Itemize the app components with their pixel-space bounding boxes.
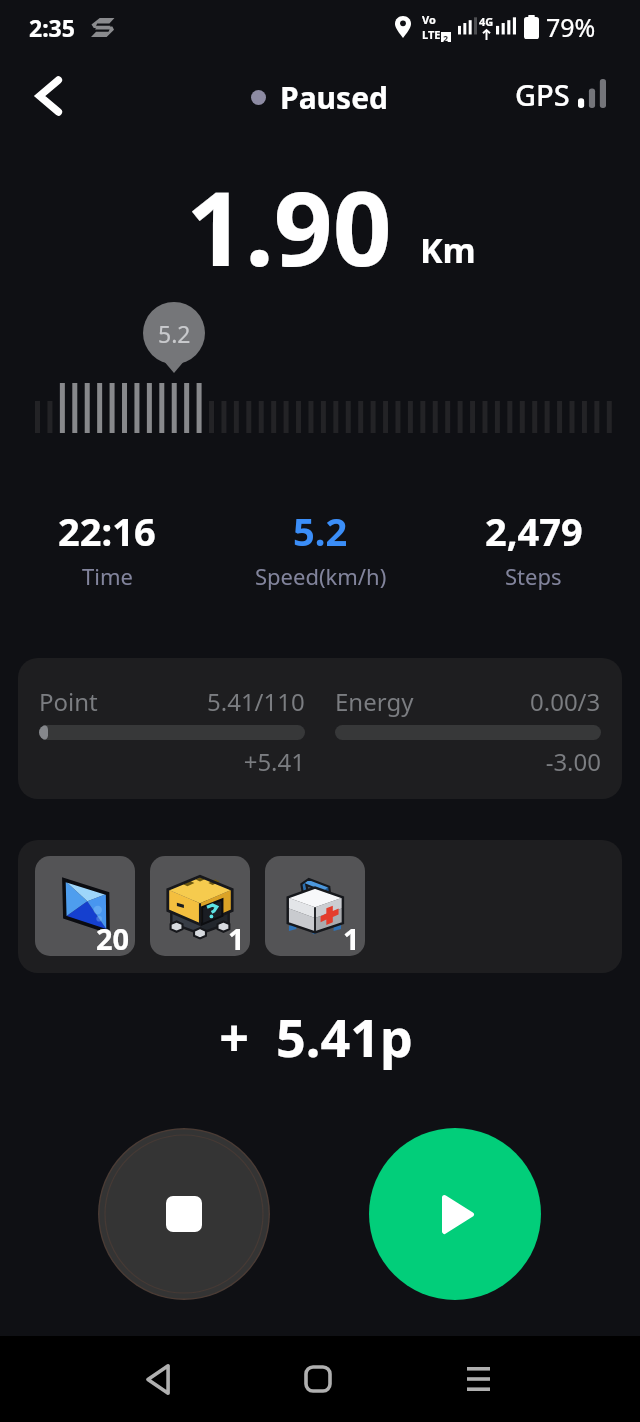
staticText: 2:35	[29, 12, 75, 43]
staticText: Paused	[280, 77, 389, 118]
button[interactable]: Menu	[443, 1336, 513, 1422]
staticText: 20	[96, 919, 130, 956]
staticText: 4G	[479, 14, 494, 29]
staticText: Point	[39, 685, 98, 718]
staticText: Energy	[335, 685, 414, 718]
staticText: Steps	[505, 561, 562, 591]
staticText: 2	[443, 32, 449, 42]
button[interactable]: Item 3	[265, 856, 365, 956]
staticText: Time	[82, 561, 133, 591]
staticText: 1.90	[186, 156, 392, 296]
staticText: 79%	[546, 10, 596, 44]
button[interactable]: Stop	[98, 1128, 270, 1300]
staticText: 1	[343, 919, 360, 956]
staticText: Km	[420, 227, 476, 273]
staticText: 22:16	[58, 505, 156, 557]
staticText: 5.2	[293, 505, 348, 557]
button[interactable]: Back	[123, 1336, 193, 1422]
button[interactable]: GPS signal	[511, 71, 610, 118]
staticText: GPS	[515, 75, 570, 114]
button[interactable]: Item 1	[35, 856, 135, 956]
button[interactable]: Back	[18, 65, 80, 127]
staticText: 5.2	[158, 318, 191, 349]
button[interactable]: Item 2	[150, 856, 250, 956]
staticText: Vo	[422, 12, 436, 27]
staticText: +5.41	[39, 745, 305, 778]
staticText: 5.41/110	[207, 685, 305, 718]
staticText: 1	[228, 919, 245, 956]
staticText: 2,479	[485, 505, 583, 557]
staticText: -3.00	[335, 745, 601, 778]
staticText: 0.00/3	[530, 685, 601, 718]
staticText: LTE	[422, 27, 441, 42]
button[interactable]: Home	[283, 1336, 353, 1422]
staticText: + 5.41p	[0, 1001, 636, 1072]
staticText: Speed(km/h)	[255, 561, 387, 591]
button[interactable]: Resume	[369, 1128, 541, 1300]
